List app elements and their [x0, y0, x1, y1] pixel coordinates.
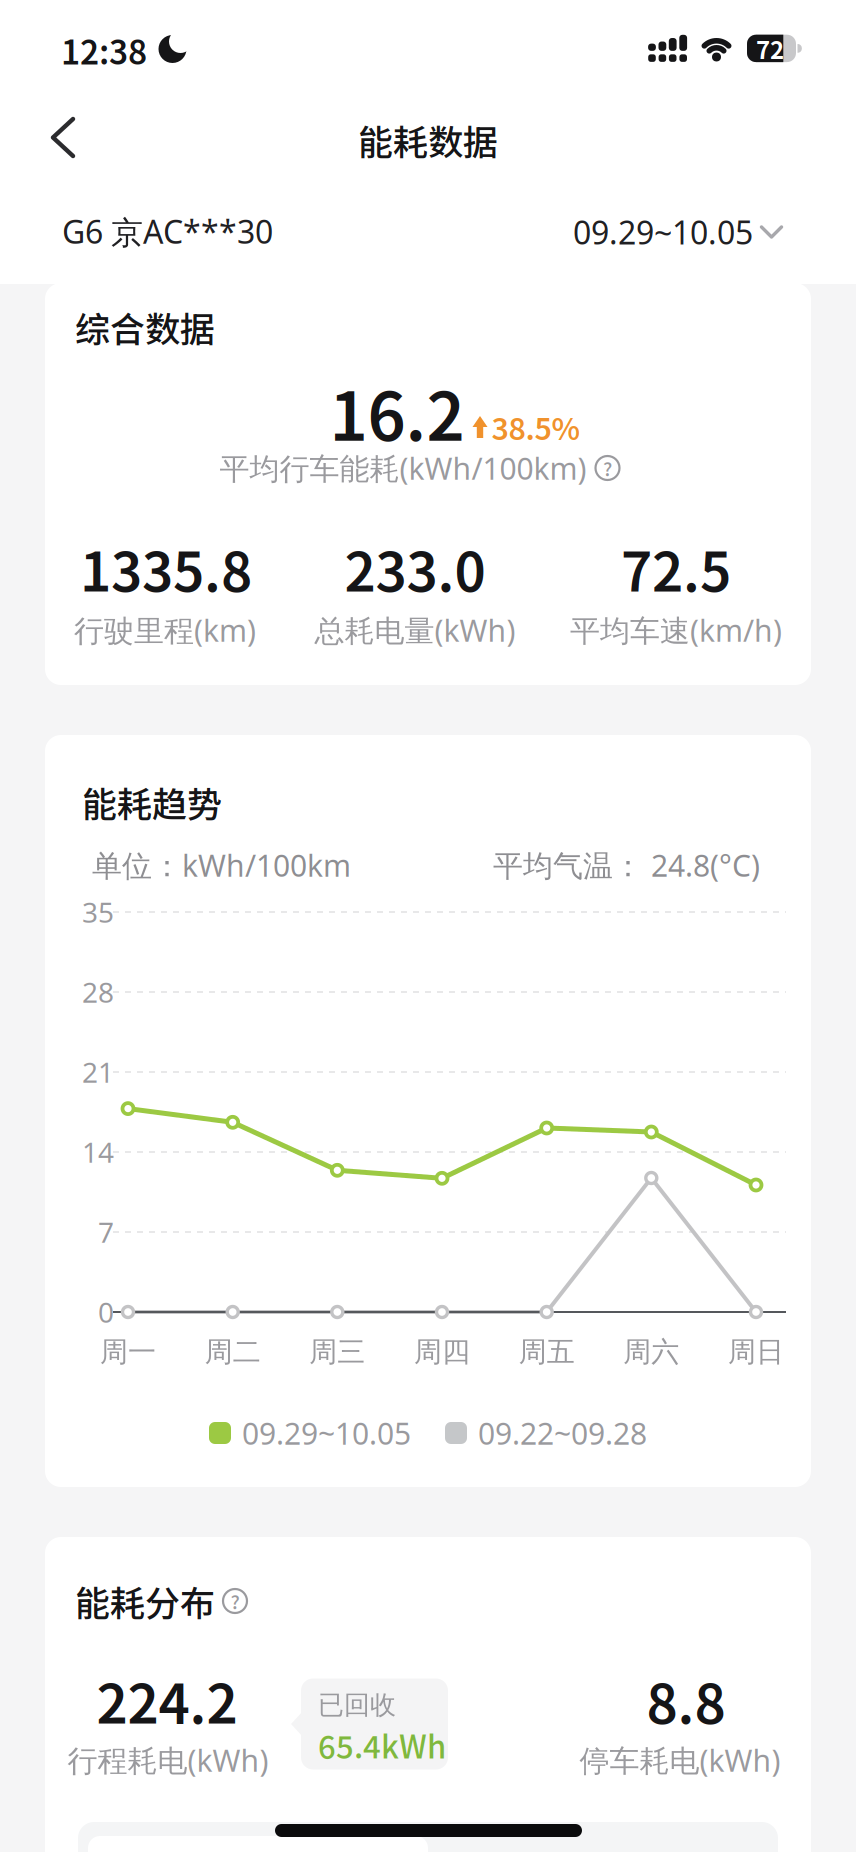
staticText: ?	[603, 454, 612, 482]
staticText: 14	[82, 1133, 114, 1171]
staticText: 72.5	[621, 529, 731, 607]
staticText: ?	[230, 1587, 239, 1615]
staticText: 已回收	[318, 1689, 396, 1721]
staticText: 周六	[623, 1334, 679, 1370]
staticText: 周三	[309, 1334, 365, 1370]
staticText: 停车耗电(kWh)	[579, 1740, 780, 1780]
staticText: 8.8	[646, 1661, 725, 1739]
staticText: 能耗数据	[358, 115, 498, 165]
staticText: 233.0	[344, 529, 485, 607]
button[interactable]: 09.29~10.05	[573, 210, 783, 254]
staticText: 周一	[100, 1334, 156, 1370]
staticText: 单位：kWh/100km	[92, 845, 351, 885]
staticText: 平均车速(km/h)	[570, 610, 782, 650]
staticText: 224.2	[96, 1661, 237, 1739]
staticText: 行程耗电(kWh)	[67, 1740, 268, 1780]
staticText: 总耗电量(kWh)	[314, 610, 515, 650]
staticText: 35	[82, 893, 114, 931]
staticText: 平均行车能耗(kWh/100km)	[219, 448, 586, 488]
staticText: 综合数据	[75, 302, 215, 352]
staticText: 12:38	[61, 26, 147, 74]
button[interactable]: G6 京AC***30	[62, 210, 273, 253]
staticText: 09.29~10.05	[242, 1413, 411, 1453]
staticText: 16.2	[329, 364, 464, 460]
staticText: 09.22~09.28	[478, 1413, 647, 1453]
staticText: 28	[82, 973, 114, 1011]
staticText: 1335.8	[80, 529, 252, 607]
staticText: 09.29~10.05	[573, 210, 753, 254]
staticText: 平均气温： 24.8(°C)	[493, 845, 760, 885]
staticText: 7	[98, 1213, 114, 1251]
staticText: 能耗分布	[75, 1576, 215, 1626]
staticText: 周五	[519, 1334, 575, 1370]
staticText: 周四	[414, 1334, 470, 1370]
staticText: 周日	[728, 1334, 784, 1370]
button[interactable]: Help	[594, 455, 620, 481]
button[interactable]: Selected segment	[88, 1836, 428, 1852]
staticText: 能耗趋势	[82, 777, 222, 827]
staticText: G6 京AC***30	[62, 210, 273, 253]
staticText: 72	[756, 31, 784, 66]
button[interactable]: Help	[222, 1588, 248, 1614]
staticText: 21	[82, 1053, 114, 1091]
staticText: 65.4kWh	[318, 1723, 446, 1767]
staticText: 行驶里程(km)	[74, 610, 256, 650]
staticText: 周二	[205, 1334, 261, 1370]
staticText: 38.5%	[491, 405, 580, 449]
staticText: 0	[98, 1293, 114, 1331]
button[interactable]: Back	[49, 117, 77, 158]
